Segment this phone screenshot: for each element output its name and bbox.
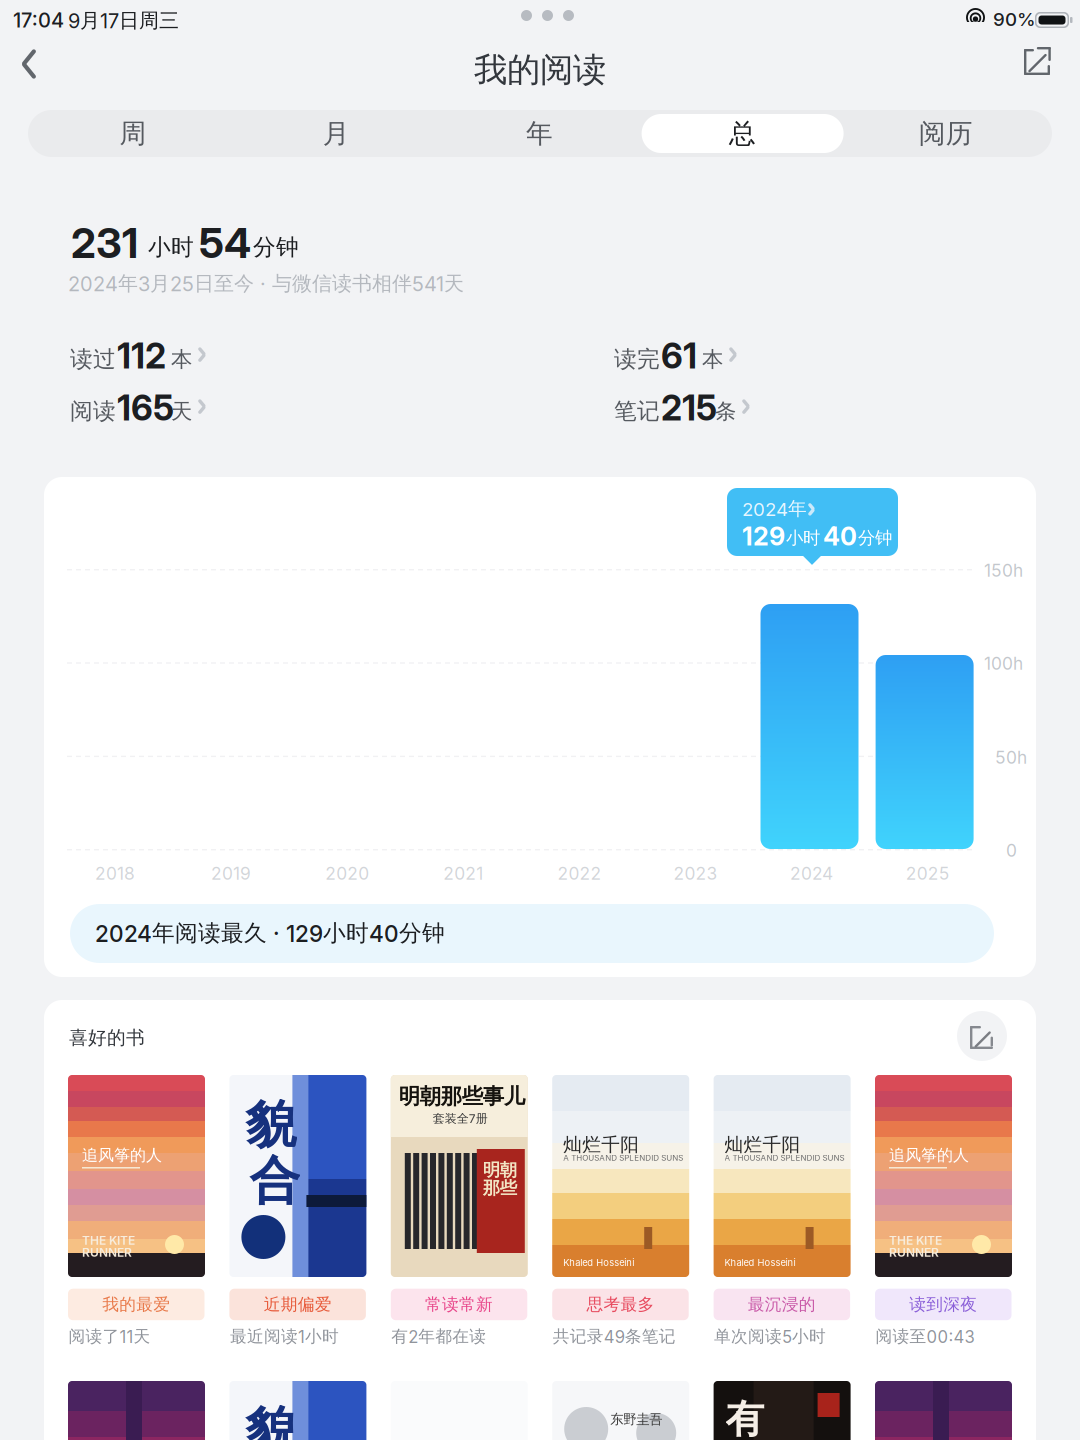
- staticText: 2020: [325, 863, 369, 884]
- button[interactable]: 月: [235, 114, 437, 153]
- staticText: 总: [729, 117, 756, 150]
- button[interactable]: 读完: [612, 333, 912, 379]
- staticText: 貌: [245, 1093, 296, 1157]
- staticText: 明朝: [483, 1159, 517, 1181]
- staticText: RUNNER: [889, 1245, 939, 1259]
- staticText: 你: [726, 1437, 765, 1440]
- button[interactable]: 编辑: [957, 1011, 1007, 1061]
- staticText: 喜好的书: [69, 1026, 145, 1049]
- staticText: THE KITE: [82, 1233, 135, 1247]
- staticText: 小时: [786, 527, 820, 549]
- staticText: 129: [742, 521, 785, 552]
- staticText: Khaled Hosseini: [725, 1257, 796, 1268]
- staticText: 40: [823, 521, 857, 552]
- staticText: 东野圭吾: [610, 1411, 662, 1428]
- staticText: 月: [323, 117, 350, 150]
- staticText: A THOUSAND SPLENDID SUNS: [725, 1153, 845, 1163]
- staticText: 100h: [984, 653, 1023, 674]
- staticText: 2024年: [742, 497, 807, 520]
- staticText: THE KITE: [889, 1233, 942, 1247]
- staticText: 112: [117, 335, 166, 377]
- button[interactable]: 貌: [229, 1075, 366, 1365]
- staticText: 阅读了11天: [68, 1326, 150, 1347]
- staticText: 我的阅读: [474, 49, 606, 91]
- button[interactable]: 阅历: [845, 114, 1047, 153]
- staticText: 2025: [906, 863, 950, 884]
- button[interactable]: 年: [438, 114, 640, 153]
- staticText: 分钟: [858, 527, 892, 549]
- staticText: 追风筝的人: [889, 1145, 969, 1165]
- staticText: 读过: [70, 345, 116, 374]
- staticText: 本: [171, 346, 192, 373]
- staticText: 笔记: [614, 397, 660, 426]
- staticText: 54: [199, 218, 251, 268]
- button[interactable]: 追风筝的人: [875, 1075, 1012, 1365]
- button[interactable]: 笔记: [612, 385, 912, 431]
- staticText: 最近阅读1小时: [230, 1326, 339, 1347]
- staticText: 0: [1006, 840, 1017, 861]
- staticText: A THOUSAND SPLENDID SUNS: [563, 1153, 683, 1163]
- staticText: 读到深夜: [909, 1294, 977, 1315]
- staticText: 有: [726, 1395, 765, 1440]
- staticText: 追风筝的人: [82, 1145, 162, 1165]
- button[interactable]: 2024年阅读最久 · 129小时40分钟: [70, 904, 994, 963]
- staticText: Khaled Hosseini: [563, 1257, 634, 1268]
- staticText: 本: [702, 346, 723, 373]
- staticText: 共记录49条笔记: [553, 1326, 676, 1347]
- staticText: RUNNER: [82, 1245, 132, 1259]
- staticText: 阅历: [919, 117, 973, 150]
- button[interactable]: 明朝那些事儿: [391, 1075, 528, 1365]
- staticText: 灿烂千阳: [725, 1133, 801, 1156]
- staticText: 条: [715, 398, 736, 425]
- staticText: 合: [249, 1149, 300, 1213]
- staticText: 165: [117, 387, 174, 429]
- staticText: 61: [661, 335, 697, 377]
- button[interactable]: 周: [32, 114, 234, 153]
- staticText: 灿烂千阳: [563, 1133, 639, 1156]
- staticText: 2024年3月25日至今 · 与微信读书相伴541天: [68, 271, 464, 296]
- staticText: 单次阅读5小时: [714, 1326, 826, 1347]
- button[interactable]: 灿烂千阳: [714, 1075, 851, 1365]
- staticText: 150h: [984, 560, 1023, 581]
- staticText: 阅读至00:43: [875, 1326, 974, 1347]
- staticText: 2022: [557, 863, 601, 884]
- staticText: 9月17日周三: [68, 8, 179, 33]
- staticText: 那些: [483, 1177, 517, 1199]
- staticText: 近期偏爱: [264, 1294, 332, 1315]
- staticText: 90%: [993, 8, 1036, 31]
- staticText: 2021: [443, 863, 483, 884]
- staticText: 50h: [995, 747, 1027, 768]
- staticText: 2023: [673, 863, 717, 884]
- staticText: 有2年都在读: [391, 1326, 486, 1347]
- staticText: 常读常新: [425, 1294, 493, 1315]
- staticText: 17:04: [13, 8, 64, 32]
- staticText: 2018: [95, 863, 135, 884]
- button[interactable]: 总: [642, 114, 844, 153]
- staticText: 2019: [211, 863, 251, 884]
- staticText: 小时: [148, 233, 194, 262]
- staticText: 天: [171, 398, 192, 425]
- staticText: 215: [661, 387, 717, 429]
- staticText: 231: [71, 218, 138, 268]
- staticText: 读完: [614, 345, 660, 374]
- staticText: 2024: [790, 863, 833, 884]
- staticText: 周: [119, 117, 146, 150]
- staticText: 最沉浸的: [748, 1294, 816, 1315]
- staticText: 貌: [245, 1399, 296, 1440]
- staticText: 套装全7册: [433, 1111, 488, 1126]
- staticText: 2024年阅读最久 · 129小时40分钟: [95, 919, 445, 948]
- button[interactable]: 阅读: [68, 385, 368, 431]
- staticText: 明朝那些事儿: [399, 1083, 525, 1110]
- staticText: 分钟: [253, 233, 299, 262]
- staticText: 思考最多: [586, 1294, 654, 1315]
- button[interactable]: 分享: [1014, 34, 1072, 94]
- button[interactable]: 读过: [68, 333, 368, 379]
- button[interactable]: 灿烂千阳: [552, 1075, 689, 1365]
- button[interactable]: 返回: [0, 34, 58, 94]
- staticText: 年: [526, 117, 553, 150]
- button[interactable]: 追风筝的人: [68, 1075, 205, 1365]
- staticText: 阅读: [70, 397, 116, 426]
- staticText: 我的最爱: [102, 1294, 170, 1315]
